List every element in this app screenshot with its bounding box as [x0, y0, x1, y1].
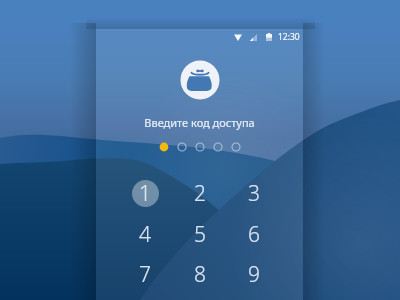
button[interactable]: 5 [173, 213, 227, 255]
button[interactable]: 4 [118, 213, 172, 255]
staticText: 3 [248, 179, 260, 208]
staticText: 8 [194, 260, 206, 289]
button[interactable]: 3 [227, 172, 281, 214]
button[interactable]: 7 [118, 253, 172, 295]
staticText: Введите код доступа [144, 115, 255, 130]
button[interactable]: 8 [173, 253, 227, 295]
staticText: 1 [139, 179, 151, 208]
button[interactable]: 1 [118, 172, 172, 214]
staticText: 6 [248, 220, 260, 249]
staticText: 5 [194, 220, 206, 249]
staticText: 4 [139, 220, 151, 249]
button[interactable]: 9 [227, 253, 281, 295]
staticText: 9 [248, 260, 260, 289]
staticText: 2 [194, 179, 206, 208]
staticText: 7 [139, 260, 151, 289]
staticText: 12:30 [278, 31, 300, 43]
button[interactable]: 2 [173, 172, 227, 214]
button[interactable]: 6 [227, 213, 281, 255]
